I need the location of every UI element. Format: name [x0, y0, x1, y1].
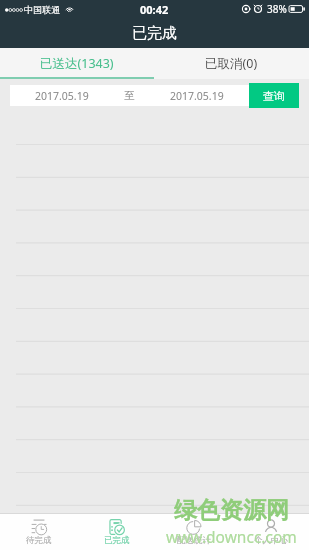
staticText: 绿色资源网 — [174, 496, 289, 525]
button[interactable]: 2017.05.19 — [10, 85, 113, 106]
staticText: 中国联通 — [24, 4, 60, 15]
staticText: 已送达(1343) — [40, 55, 114, 72]
staticText: 已完成 — [132, 24, 177, 43]
staticText: www.downcc.com — [166, 526, 297, 547]
staticText: 已完成 — [104, 535, 130, 546]
button[interactable]: 已完成 — [78, 514, 155, 550]
staticText: 至 — [124, 89, 135, 102]
staticText: 00:42 — [140, 2, 169, 17]
staticText: 个人中心 — [254, 535, 288, 546]
staticText: 配送统计 — [177, 535, 211, 546]
button[interactable]: 已取消(0) — [154, 48, 309, 79]
button[interactable]: 配送统计 — [155, 514, 232, 550]
button[interactable]: 个人中心 — [232, 514, 309, 550]
staticText: 2017.05.19 — [35, 89, 89, 103]
staticText: 2017.05.19 — [170, 89, 224, 103]
staticText: 待完成 — [26, 535, 52, 546]
staticText: 已取消(0) — [205, 55, 258, 72]
button[interactable]: 待完成 — [0, 514, 78, 550]
staticText: 38% — [267, 2, 287, 16]
button[interactable]: 2017.05.19 — [145, 85, 249, 106]
button[interactable]: 已送达(1343) — [0, 48, 154, 79]
staticText: 查询 — [263, 89, 285, 103]
button[interactable]: 查询 — [249, 83, 299, 108]
